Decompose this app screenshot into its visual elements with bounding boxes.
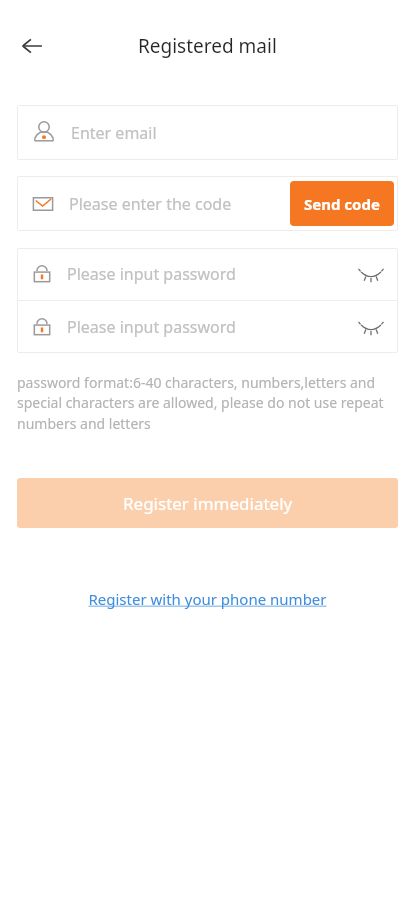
staticText: Registered mail <box>138 33 277 59</box>
button[interactable]: Register with your phone number <box>80 585 335 613</box>
button[interactable]: Please input password <box>17 301 398 353</box>
button[interactable]: Send code <box>290 181 394 226</box>
button[interactable]: Please input password <box>17 248 398 300</box>
staticText: Please enter the code <box>69 193 290 215</box>
staticText: Please input password <box>67 316 348 338</box>
staticText: Please input password <box>67 263 348 285</box>
button[interactable]: Show password <box>348 251 394 297</box>
staticText: Register with your phone number <box>88 589 327 609</box>
button[interactable]: Please enter the code <box>17 176 398 231</box>
staticText: Register immediately <box>123 492 293 515</box>
button[interactable]: Register immediately <box>17 478 398 528</box>
staticText: password format:6-40 characters, numbers… <box>17 373 398 434</box>
button[interactable]: Enter email <box>17 105 398 160</box>
staticText: Send code <box>304 194 380 214</box>
staticText: Enter email <box>71 122 157 144</box>
button[interactable]: Back <box>12 26 52 66</box>
button[interactable]: Show password <box>348 304 394 350</box>
